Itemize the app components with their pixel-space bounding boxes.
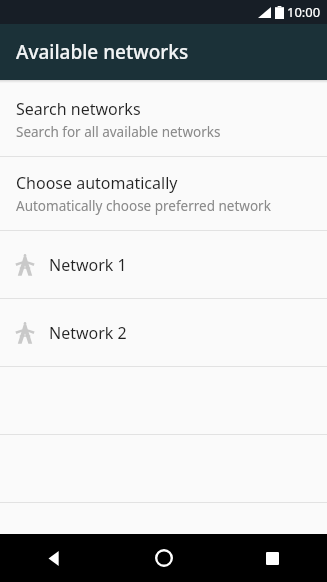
- button[interactable]: Recent apps: [218, 534, 327, 582]
- staticText: Network 1: [49, 254, 127, 276]
- button[interactable]: Network 2: [0, 299, 327, 366]
- staticText: Network 2: [49, 322, 127, 344]
- staticText: Automatically choose preferred network: [16, 197, 271, 215]
- button[interactable]: Home: [109, 534, 218, 582]
- staticText: Search for all available networks: [16, 123, 221, 141]
- button[interactable]: Back: [0, 534, 109, 582]
- staticText: Search networks: [16, 98, 141, 120]
- staticText: Available networks: [16, 39, 189, 65]
- button[interactable]: Choose automatically: [0, 157, 327, 230]
- button[interactable]: Network 1: [0, 231, 327, 298]
- staticText: 10:00: [287, 3, 321, 21]
- staticText: Choose automatically: [16, 172, 178, 194]
- button[interactable]: Search networks: [0, 83, 327, 156]
